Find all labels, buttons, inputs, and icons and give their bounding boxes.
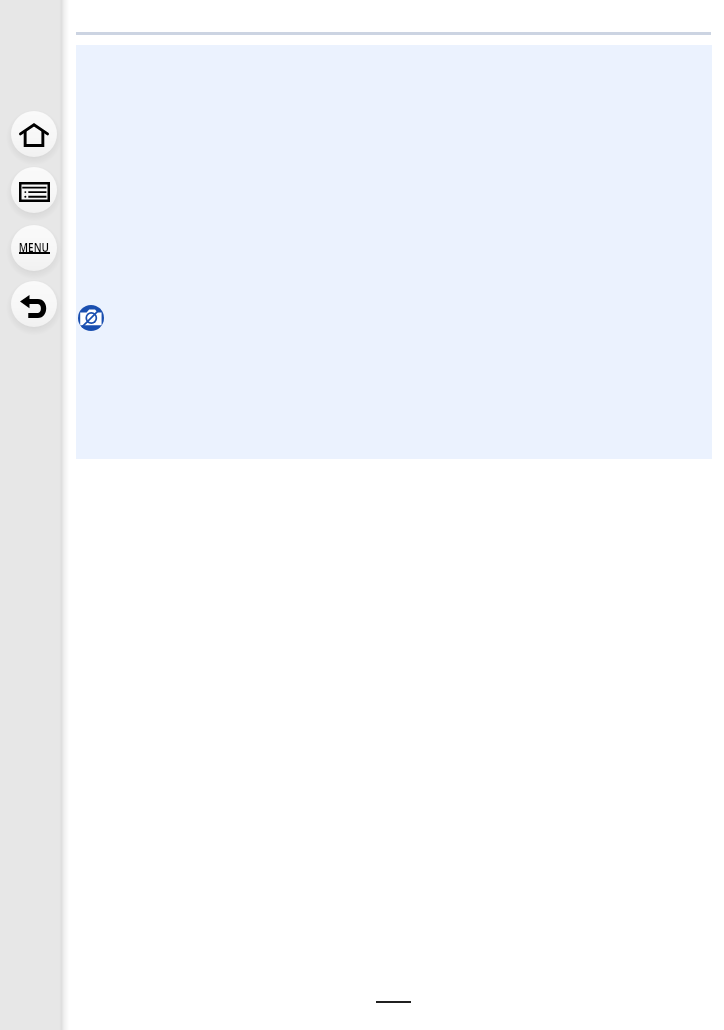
button[interactable]: Home [11,111,57,157]
button[interactable]: Menu [11,225,57,271]
button[interactable]: Back [11,281,57,327]
button[interactable]: Table of contents [11,167,57,213]
staticText: MENU [19,239,49,256]
